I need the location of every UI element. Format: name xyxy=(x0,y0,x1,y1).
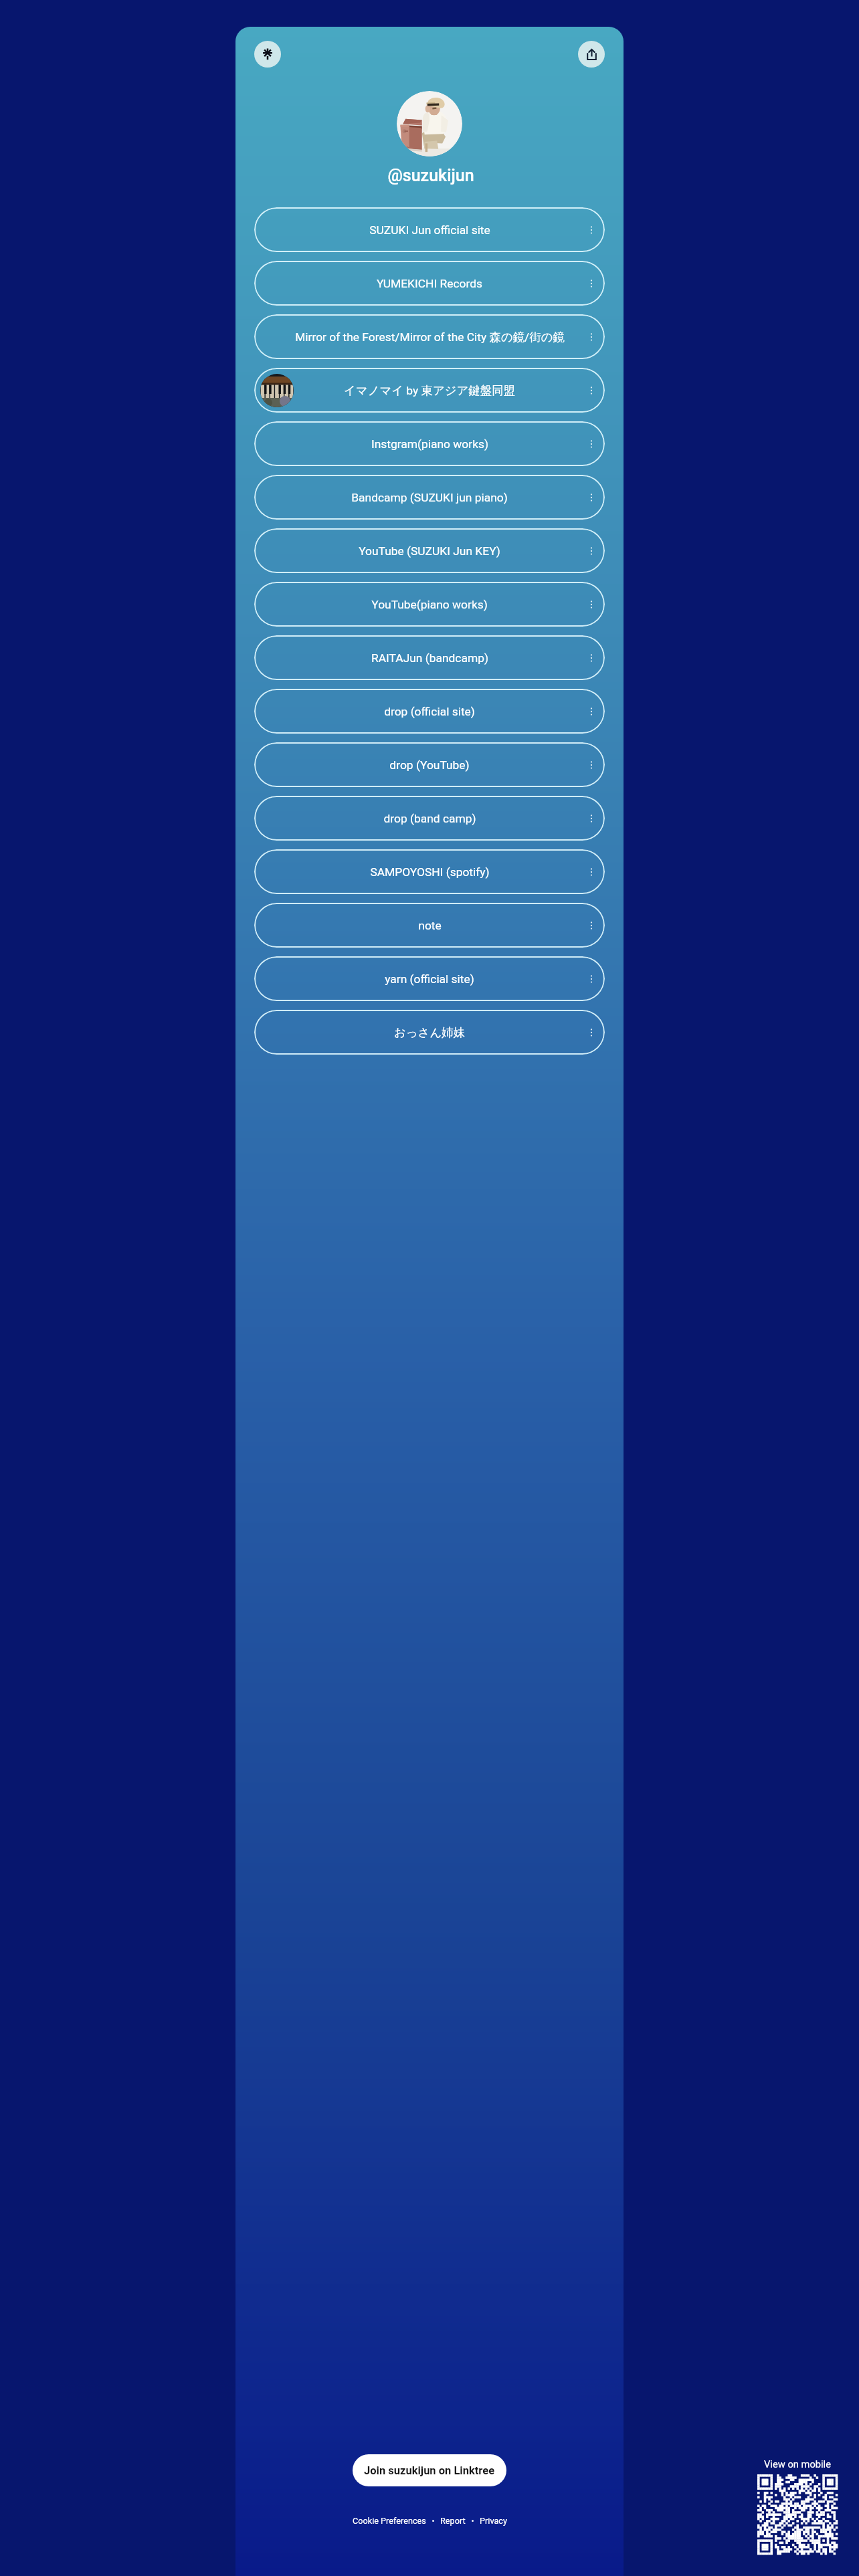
button[interactable]: More options xyxy=(584,223,599,237)
button[interactable]: More options xyxy=(584,383,599,398)
button[interactable]: YouTube(piano works) xyxy=(254,582,605,627)
button[interactable]: More options xyxy=(584,811,599,826)
staticText: RAITAJun (bandcamp) xyxy=(371,651,488,665)
button[interactable]: Privacy xyxy=(480,2512,507,2529)
staticText: Privacy xyxy=(480,2516,507,2526)
button[interactable]: RAITAJun (bandcamp) xyxy=(254,635,605,680)
button[interactable]: Share xyxy=(578,41,605,68)
button[interactable]: note xyxy=(254,903,605,948)
button[interactable]: More options xyxy=(584,330,599,344)
staticText: YouTube (SUZUKI Jun KEY) xyxy=(359,544,500,558)
staticText: SUZUKI Jun official site xyxy=(369,223,490,237)
button[interactable]: More options xyxy=(584,597,599,612)
staticText: YouTube(piano works) xyxy=(371,598,488,611)
button[interactable]: More options xyxy=(584,972,599,986)
staticText: YUMEKICHI Records xyxy=(377,277,482,290)
staticText: drop (official site) xyxy=(384,705,475,718)
button[interactable]: More options xyxy=(584,276,599,291)
button[interactable]: SAMPOYOSHI (spotify) xyxy=(254,849,605,894)
button[interactable]: Cookie Preferences xyxy=(353,2512,426,2529)
staticText: yarn (official site) xyxy=(385,972,474,986)
button[interactable]: Bandcamp (SUZUKI jun piano) xyxy=(254,475,605,520)
staticText: @suzukijun xyxy=(237,166,624,185)
staticText: おっさん姉妹 xyxy=(394,1025,465,1040)
staticText: Instgram(piano works) xyxy=(371,437,488,451)
button[interactable]: drop (official site) xyxy=(254,689,605,734)
button[interactable]: Instgram(piano works) xyxy=(254,421,605,466)
staticText: イマノマイ by 東アジア鍵盤同盟 xyxy=(344,383,515,398)
staticText: Join suzukijun on Linktree xyxy=(364,2464,495,2477)
button[interactable]: Report xyxy=(440,2512,466,2529)
button[interactable]: おっさん姉妹 xyxy=(254,1010,605,1055)
staticText: View on mobile xyxy=(757,2458,838,2470)
staticText: drop (band camp) xyxy=(383,812,476,825)
staticText: Cookie Preferences xyxy=(353,2516,426,2526)
button[interactable]: SUZUKI Jun official site xyxy=(254,207,605,252)
button[interactable]: Linktree xyxy=(254,41,281,68)
button[interactable]: More options xyxy=(584,437,599,451)
button[interactable]: Join suzukijun on Linktree xyxy=(353,2454,506,2486)
button[interactable]: More options xyxy=(584,865,599,879)
button[interactable]: More options xyxy=(584,651,599,665)
button[interactable]: Mirror of the Forest/Mirror of the City … xyxy=(254,314,605,359)
button[interactable]: More options xyxy=(584,490,599,505)
button[interactable]: イマノマイ by 東アジア鍵盤同盟 xyxy=(254,368,605,413)
button[interactable]: yarn (official site) xyxy=(254,956,605,1001)
staticText: Report xyxy=(440,2516,466,2526)
staticText: drop (YouTube) xyxy=(389,758,470,772)
button[interactable]: YouTube (SUZUKI Jun KEY) xyxy=(254,528,605,573)
button[interactable]: More options xyxy=(584,758,599,772)
button[interactable]: More options xyxy=(584,918,599,933)
button[interactable]: YUMEKICHI Records xyxy=(254,261,605,306)
button[interactable]: drop (band camp) xyxy=(254,796,605,841)
staticText: Bandcamp (SUZUKI jun piano) xyxy=(351,491,508,504)
staticText: SAMPOYOSHI (spotify) xyxy=(370,865,490,879)
button[interactable]: More options xyxy=(584,1025,599,1040)
button[interactable]: More options xyxy=(584,704,599,719)
button[interactable]: drop (YouTube) xyxy=(254,742,605,787)
staticText: note xyxy=(418,919,442,932)
staticText: Mirror of the Forest/Mirror of the City … xyxy=(295,330,565,344)
button[interactable]: More options xyxy=(584,544,599,558)
